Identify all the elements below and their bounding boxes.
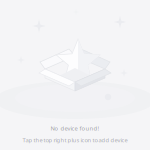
staticText: No device found! — [50, 124, 99, 132]
staticText: Tap the top right plus icon to add devic… — [22, 136, 127, 144]
